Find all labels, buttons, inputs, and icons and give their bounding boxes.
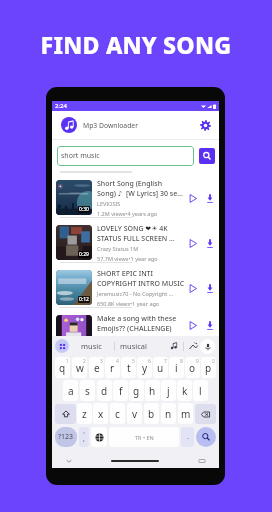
button[interactable]: d (97, 380, 112, 401)
staticText: 2:24 (55, 102, 67, 110)
button[interactable]: u (153, 357, 168, 378)
staticText: 2 (83, 358, 86, 365)
staticText: x (98, 407, 104, 421)
button[interactable]: Play (185, 266, 201, 311)
button[interactable]: Voice input (200, 339, 215, 354)
button[interactable]: Settings (195, 115, 215, 135)
staticText: 4 (116, 358, 119, 365)
staticText: LEVIOSIS (97, 200, 121, 207)
button[interactable]: Download (203, 311, 216, 336)
staticText: o (189, 361, 196, 375)
button[interactable]: y (137, 357, 152, 378)
button[interactable]: s (80, 380, 95, 401)
button[interactable]: n (161, 403, 176, 424)
button[interactable]: Make a song with these (52, 307, 219, 336)
button[interactable]: p (201, 357, 216, 378)
staticText: z (82, 407, 87, 421)
staticText: m (181, 407, 191, 421)
button[interactable]: Shift (55, 404, 76, 424)
staticText: 5 (132, 358, 135, 365)
staticText: STATUS FULL SCREEN … (97, 234, 175, 244)
button[interactable]: t (121, 357, 136, 378)
button[interactable]: Translate (187, 340, 199, 352)
button[interactable]: ?123 (55, 427, 77, 447)
button[interactable]: Comma (79, 427, 89, 447)
staticText: q (59, 361, 66, 375)
staticText: h (149, 384, 156, 398)
button[interactable]: v (127, 403, 142, 424)
button[interactable]: l (193, 380, 208, 401)
staticText: ° (83, 431, 86, 438)
button[interactable]: c (110, 403, 125, 424)
staticText: g (133, 384, 140, 398)
button[interactable]: Apps (55, 339, 69, 353)
staticText: 0 (212, 358, 215, 365)
button[interactable]: i (169, 357, 184, 378)
button[interactable]: r (105, 357, 120, 378)
staticText: 8 (180, 358, 183, 365)
button[interactable]: Play (185, 221, 201, 266)
button[interactable]: o (185, 357, 200, 378)
button[interactable]: TR • EN (109, 427, 179, 447)
staticText: b (148, 407, 155, 421)
button[interactable]: x (93, 403, 108, 424)
staticText: c (115, 407, 120, 421)
staticText: ?123 (58, 432, 74, 442)
button[interactable]: Search (196, 427, 216, 447)
staticText: Emojis?? (CHALLENGE) (97, 324, 172, 334)
button[interactable]: a (63, 380, 78, 401)
button[interactable]: Period (181, 427, 194, 447)
staticText: 0:30 (79, 206, 89, 213)
button[interactable]: Hide keyboard (64, 456, 74, 466)
button[interactable]: e (89, 357, 104, 378)
staticText: v (132, 407, 138, 421)
staticText: Jeremusic70 - No Copyright … (97, 290, 174, 297)
button[interactable]: musical (115, 336, 151, 356)
button[interactable]: k (177, 380, 192, 401)
staticText: musical (120, 341, 147, 351)
staticText: Mp3 Downloader (83, 121, 138, 130)
button[interactable]: g (129, 380, 144, 401)
staticText: n (165, 407, 172, 421)
button[interactable]: Download (203, 266, 216, 311)
staticText: l (199, 384, 202, 398)
button[interactable]: j (161, 380, 176, 401)
staticText: 0:29 (79, 251, 89, 258)
button[interactable]: m (178, 403, 193, 424)
button[interactable]: Music (168, 340, 180, 352)
staticText: LOVELY SONG ❤☀ 4K (97, 224, 168, 234)
button[interactable]: Backspace (195, 404, 216, 424)
button[interactable]: Search (199, 148, 215, 164)
button[interactable]: z (77, 403, 92, 424)
staticText: FIND ANY SONG (0, 29, 272, 61)
button[interactable]: f (113, 380, 128, 401)
staticText: i (175, 361, 178, 375)
staticText: y (142, 361, 148, 375)
button[interactable]: Download (203, 221, 216, 266)
staticText: 1 (66, 358, 69, 365)
button[interactable]: short music (57, 146, 194, 166)
staticText: 3 (100, 358, 103, 365)
button[interactable]: music (69, 336, 114, 356)
button[interactable]: 0:12 (52, 262, 219, 307)
button[interactable]: 0:30 (52, 172, 219, 217)
button[interactable]: Play (185, 311, 201, 336)
staticText: p (205, 361, 212, 375)
button[interactable]: h (145, 380, 160, 401)
staticText: r (110, 361, 115, 375)
staticText: short music (61, 151, 100, 161)
button[interactable]: 0:29 (52, 217, 219, 262)
button[interactable]: q (55, 357, 70, 378)
button[interactable]: Download (203, 176, 216, 221)
staticText: , (83, 434, 85, 444)
staticText: 6 (148, 358, 151, 365)
button[interactable]: Play (185, 176, 201, 221)
staticText: d (101, 384, 108, 398)
staticText: a (68, 384, 74, 398)
staticText: k (182, 384, 188, 398)
button[interactable]: Emoji (91, 427, 107, 447)
button[interactable]: Change keyboard (197, 456, 207, 466)
button[interactable]: w (72, 357, 87, 378)
staticText: . (187, 432, 189, 442)
button[interactable]: b (144, 403, 159, 424)
